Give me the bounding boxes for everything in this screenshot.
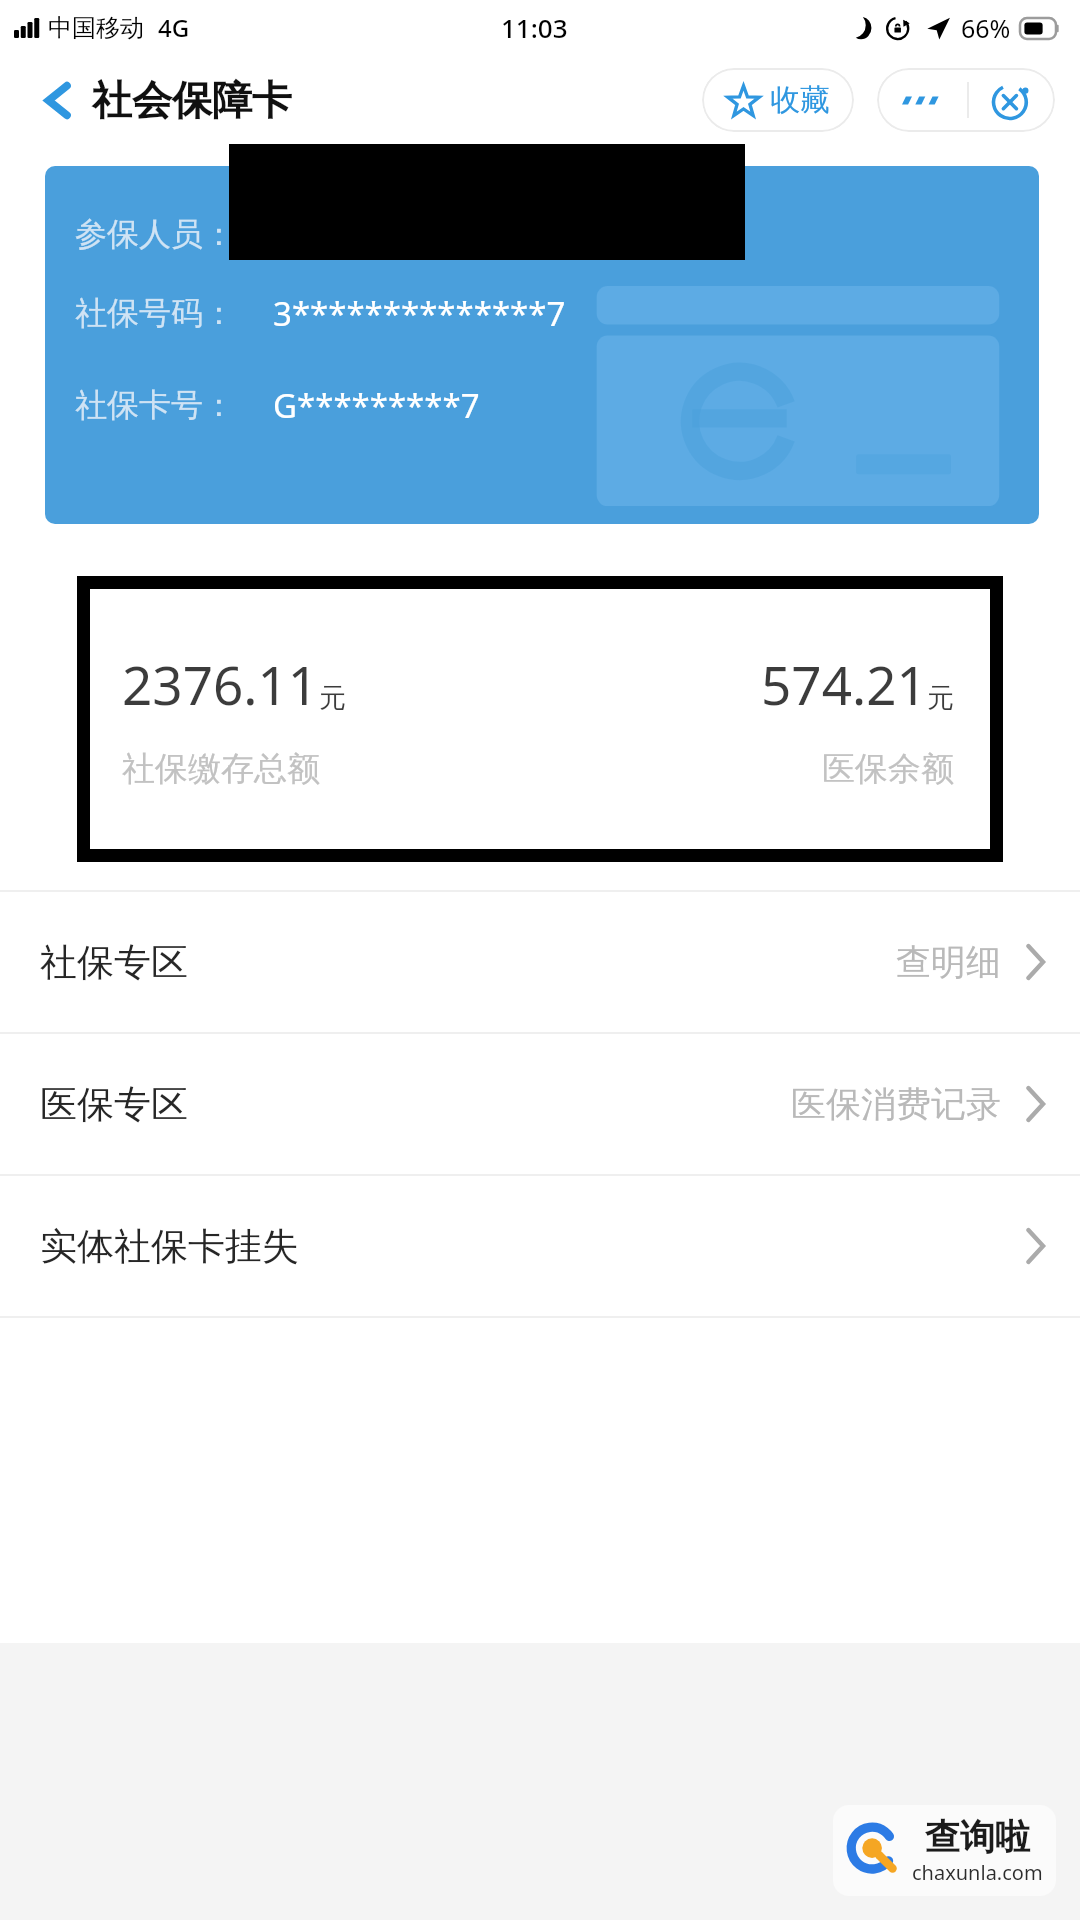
staticText: 4G — [158, 11, 190, 44]
button[interactable]: Back — [0, 63, 314, 137]
staticText: 574.21 — [761, 648, 927, 720]
staticText: 3**************7 — [273, 291, 566, 336]
button[interactable]: 医保专区 — [0, 1034, 1080, 1174]
staticText: 中国移动 — [48, 13, 144, 43]
button[interactable]: Close — [969, 68, 1055, 132]
button[interactable]: 2376.11 — [90, 589, 990, 849]
other: Back — [44, 80, 71, 121]
staticText: 2376.11 — [122, 648, 319, 720]
staticText: 参保人员： — [75, 214, 235, 254]
button[interactable]: 实体社保卡挂失 — [0, 1176, 1080, 1316]
staticText: 11:03 — [501, 10, 568, 45]
staticText: 元 — [319, 681, 346, 715]
staticText: 社保卡号： — [75, 385, 235, 425]
staticText: G*********7 — [273, 383, 480, 428]
staticText: 医保余额 — [822, 748, 954, 790]
button[interactable]: More options — [877, 68, 967, 132]
staticText: 医保消费记录 — [791, 1082, 1001, 1126]
staticText: 社保号码： — [75, 293, 235, 333]
staticText: 社保缴存总额 — [122, 748, 320, 790]
button[interactable]: 收藏 — [702, 68, 854, 132]
staticText: 收藏 — [770, 81, 830, 119]
staticText: chaxunla.com — [912, 1859, 1043, 1886]
staticText: 社保专区 — [40, 939, 188, 986]
staticText: 元 — [927, 681, 954, 715]
staticText: 医保专区 — [40, 1081, 188, 1128]
staticText: 查明细 — [896, 940, 1001, 984]
staticText: 实体社保卡挂失 — [40, 1223, 299, 1270]
button[interactable]: 社保专区 — [0, 892, 1080, 1032]
staticText: 查询啦 — [925, 1815, 1030, 1859]
staticText: 66% — [961, 11, 1011, 45]
button[interactable]: 参保人员： — [45, 166, 1039, 524]
staticText: 社会保障卡 — [92, 75, 292, 125]
